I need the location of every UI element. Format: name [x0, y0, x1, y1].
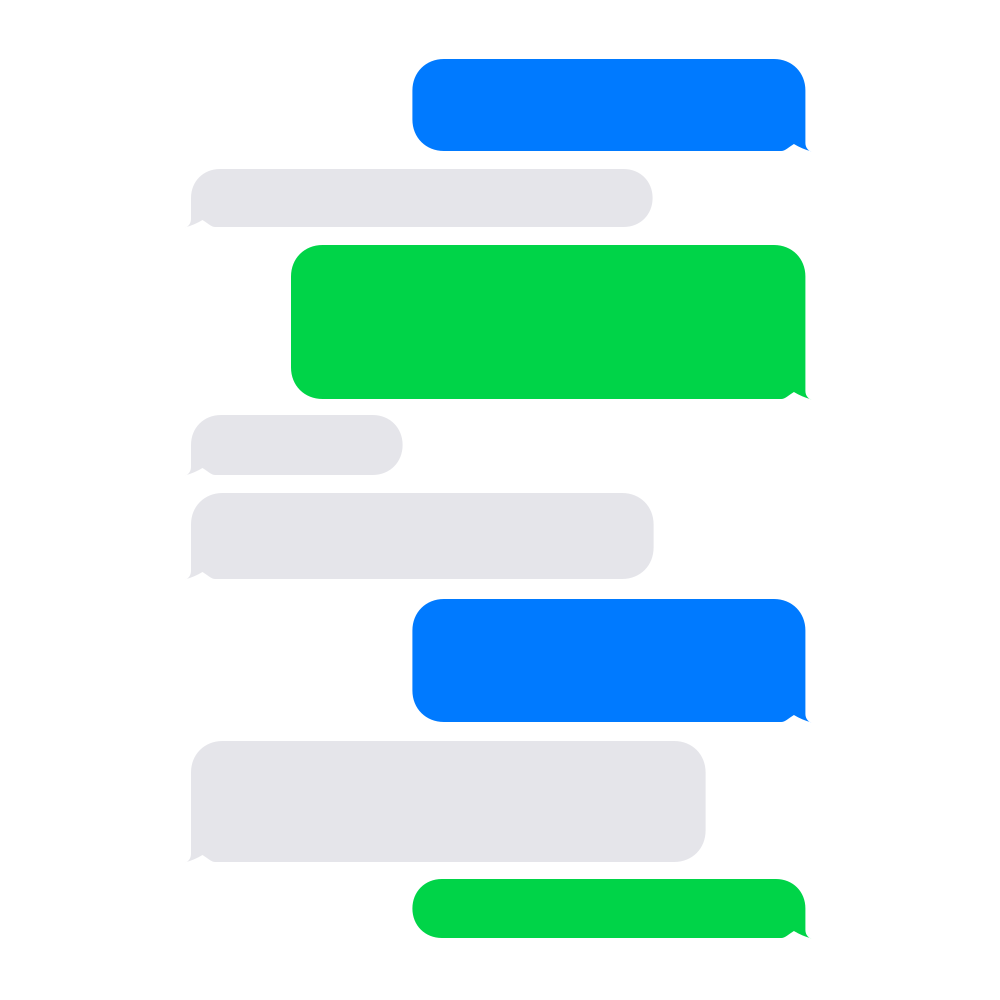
- button[interactable]: Message received: [185, 169, 653, 227]
- button[interactable]: Text message sent: [412, 879, 811, 938]
- button[interactable]: Message sent: [412, 59, 811, 151]
- button[interactable]: Message received: [185, 493, 654, 579]
- button[interactable]: Message received: [185, 415, 403, 475]
- button[interactable]: Message sent: [412, 599, 811, 722]
- button[interactable]: Message received: [185, 741, 706, 862]
- button[interactable]: Text message sent: [291, 245, 811, 399]
